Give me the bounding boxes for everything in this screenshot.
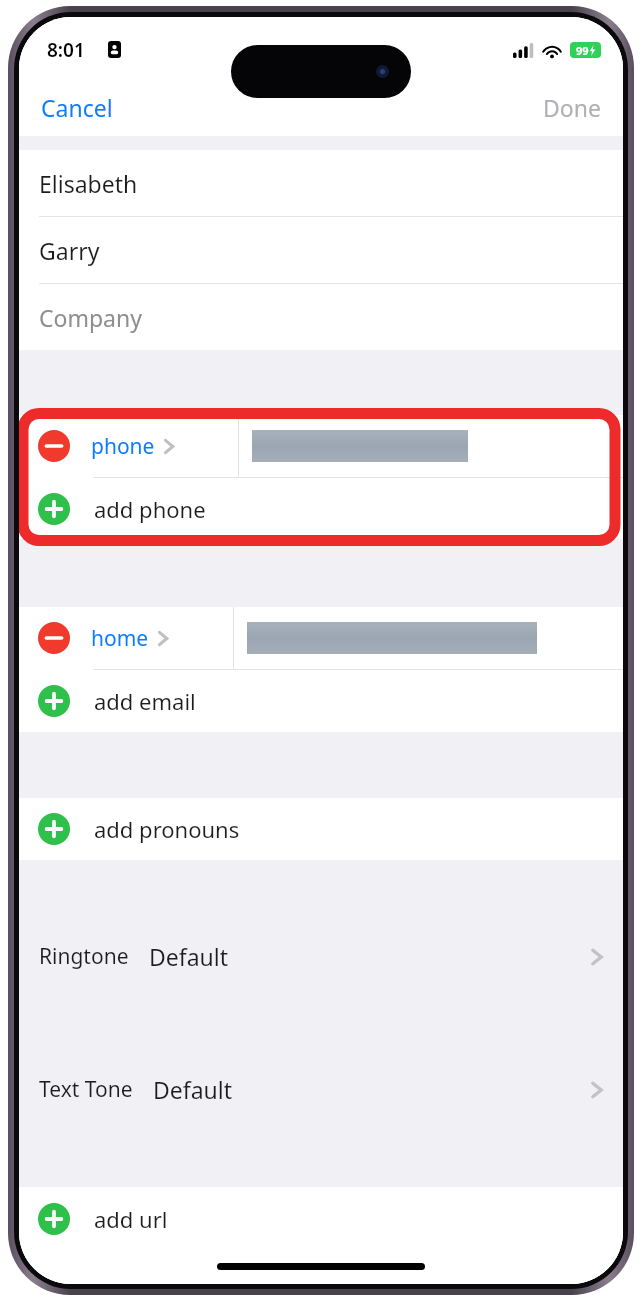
button[interactable]: Garry — [19, 217, 623, 283]
button[interactable]: Add — [38, 685, 70, 717]
staticText: Elisabeth — [39, 168, 138, 199]
staticText: Done — [543, 92, 601, 123]
staticText: home — [91, 624, 149, 653]
staticText: add url — [94, 1204, 168, 1234]
staticText: 99 — [576, 43, 589, 58]
staticText: add pronouns — [94, 814, 240, 844]
button[interactable]: Add — [19, 798, 623, 860]
button[interactable]: Add — [38, 813, 70, 845]
button[interactable]: Remove — [38, 430, 70, 462]
staticText: Default — [149, 941, 229, 972]
staticText: add phone — [94, 494, 206, 524]
button[interactable]: Remove — [19, 607, 623, 669]
staticText: Cancel — [41, 92, 113, 123]
button[interactable]: Done — [521, 84, 623, 131]
staticText: phone — [91, 432, 155, 461]
button[interactable]: Add — [19, 478, 623, 539]
staticText: Text Tone — [39, 1075, 133, 1104]
button[interactable]: Company — [19, 284, 623, 350]
button[interactable]: Cancel — [19, 84, 135, 131]
button[interactable]: Add — [19, 1187, 623, 1250]
button[interactable]: Add — [19, 670, 623, 732]
button[interactable]: Ringtone — [19, 923, 623, 990]
button[interactable]: Add — [38, 1203, 70, 1235]
staticText: 8:01 — [47, 37, 85, 63]
button[interactable]: Elisabeth — [19, 150, 623, 216]
staticText: Ringtone — [39, 942, 129, 971]
staticText: Garry — [39, 235, 100, 266]
button[interactable]: Text Tone — [19, 1056, 623, 1123]
staticText: Company — [39, 302, 142, 333]
button[interactable]: Add — [38, 493, 70, 525]
button[interactable]: Remove — [38, 622, 70, 654]
staticText: add email — [94, 686, 196, 716]
staticText: Default — [153, 1074, 233, 1105]
button[interactable]: Remove — [19, 415, 623, 477]
